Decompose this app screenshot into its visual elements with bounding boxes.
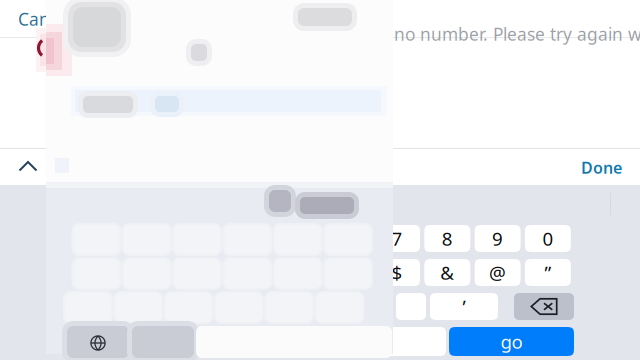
staticText: ” (544, 260, 551, 285)
staticText: ’ (462, 294, 465, 319)
button[interactable]: ” (525, 259, 571, 286)
staticText: 8 (442, 226, 453, 251)
button[interactable]: 0 (525, 225, 571, 252)
button[interactable]: Cancel (0, 7, 78, 31)
button[interactable]: & (424, 259, 470, 286)
staticText: $ (391, 260, 402, 285)
staticText: 9 (492, 226, 503, 251)
staticText: 7 (391, 226, 402, 251)
staticText: go (500, 329, 522, 354)
button[interactable]: @ (475, 259, 521, 286)
staticText: no number. Please try again with you (394, 22, 640, 45)
button[interactable]: go (449, 327, 574, 356)
staticText: @ (489, 260, 506, 285)
button[interactable]: Numbers (66, 327, 128, 356)
staticText: 0 (542, 226, 553, 251)
button[interactable]: Exclamation mark (396, 293, 426, 320)
button[interactable]: 9 (475, 225, 521, 252)
button[interactable]: Done (560, 149, 622, 186)
staticText: & (440, 260, 454, 285)
button[interactable]: 7 (374, 225, 420, 252)
button[interactable]: ’ (430, 293, 498, 320)
staticText: Cancel (18, 7, 72, 30)
button[interactable]: ! (339, 293, 385, 320)
button[interactable]: Previous field (3, 148, 53, 185)
button[interactable]: $ (374, 259, 420, 286)
staticText: Done (581, 157, 622, 178)
button[interactable]: 8 (424, 225, 470, 252)
